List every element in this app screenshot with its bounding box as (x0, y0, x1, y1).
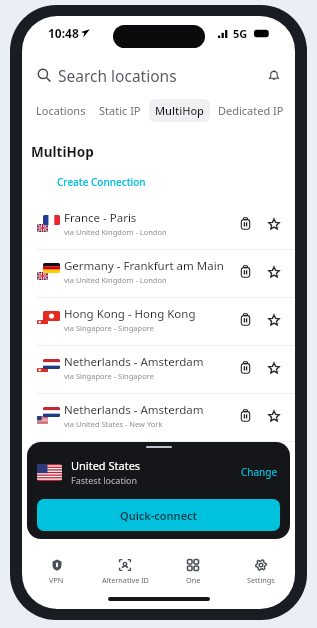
button[interactable]: Locations (30, 99, 92, 122)
staticText: France - Paris (64, 210, 137, 226)
staticText: Quick-connect (120, 508, 198, 523)
staticText: via United Kingdom - London (64, 275, 167, 285)
staticText: via United States - New York (64, 419, 163, 429)
staticText: One (186, 575, 201, 585)
staticText: Netherlands - Amsterdam (64, 402, 204, 418)
button[interactable]: Delete (237, 263, 254, 280)
button[interactable]: Alternative ID (91, 557, 159, 587)
button[interactable]: Favorite (265, 215, 282, 232)
staticText: via Singapore - Singapore (64, 323, 154, 333)
staticText: United States (71, 458, 141, 473)
staticText: Locations (36, 103, 86, 118)
button[interactable]: Netherlands - Amsterdam (22, 394, 295, 442)
button[interactable]: Delete (237, 359, 254, 376)
button[interactable]: Delete (237, 407, 254, 424)
staticText: 10:48 (48, 25, 79, 41)
button[interactable]: Delete (237, 311, 254, 328)
button[interactable]: Static IP (93, 99, 147, 122)
staticText: MultiHop (31, 143, 94, 161)
button[interactable]: Change (239, 461, 280, 483)
button[interactable]: Favorite (265, 311, 282, 328)
staticText: Static IP (99, 103, 141, 118)
staticText: Alternative ID (102, 575, 149, 585)
button[interactable]: Delete (237, 215, 254, 232)
staticText: VPN (49, 575, 64, 585)
button[interactable]: France - Paris (22, 202, 295, 250)
staticText: Hong Kong - Hong Kong (64, 306, 196, 322)
button[interactable]: Dedicated IP (212, 99, 290, 122)
button[interactable]: Quick-connect (37, 499, 280, 531)
staticText: via United Kingdom - London (64, 227, 167, 237)
staticText: 5G (233, 26, 248, 41)
button[interactable]: Create Connection (22, 175, 146, 189)
staticText: Germany - Frankfurt am Main (64, 258, 224, 274)
button[interactable]: MultiHop (149, 99, 210, 122)
button[interactable]: Favorite (265, 263, 282, 280)
staticText: Settings (247, 575, 275, 585)
button[interactable]: VPN (22, 557, 91, 587)
button[interactable]: Netherlands - Amsterdam (22, 346, 295, 394)
staticText: Change (241, 465, 278, 479)
staticText: via Singapore - Singapore (64, 371, 154, 381)
button[interactable]: Favorite (265, 407, 282, 424)
staticText: MultiHop (155, 103, 204, 118)
button[interactable]: One (159, 557, 227, 587)
staticText: Dedicated IP (218, 103, 284, 118)
staticText: Fastest location (71, 474, 137, 486)
button[interactable]: Settings (227, 557, 295, 587)
button[interactable]: Germany - Frankfurt am Main (22, 250, 295, 298)
button[interactable]: Hong Kong - Hong Kong (22, 298, 295, 346)
staticText: Search locations (58, 65, 177, 86)
button[interactable]: Favorite (265, 359, 282, 376)
button[interactable]: Notifications (266, 67, 282, 83)
staticText: Netherlands - Amsterdam (64, 354, 204, 370)
